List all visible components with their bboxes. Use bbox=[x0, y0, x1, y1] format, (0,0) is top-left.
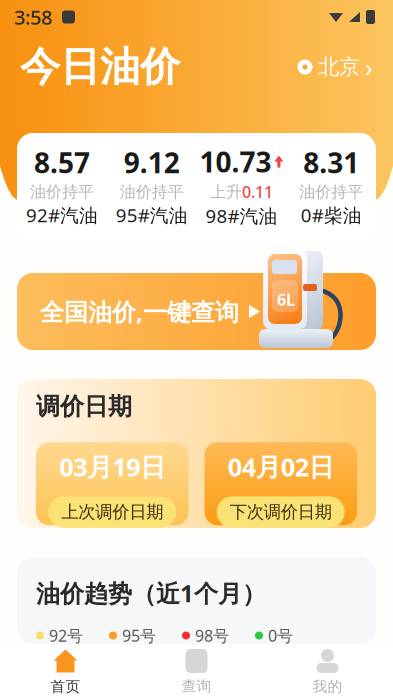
staticText: 10.73 bbox=[199, 143, 271, 180]
staticText: 95#汽油 bbox=[116, 203, 188, 227]
button[interactable]: 全国油价,一键查询 bbox=[17, 273, 376, 350]
staticText: 8.31 bbox=[303, 144, 359, 181]
staticText: 3:58 bbox=[14, 4, 52, 30]
staticText: 0号 bbox=[268, 625, 293, 646]
staticText: 北京 bbox=[318, 54, 360, 80]
staticText: 95号 bbox=[122, 625, 156, 646]
staticText: 全国油价,一键查询 bbox=[40, 296, 239, 327]
staticText: 92号 bbox=[49, 625, 83, 646]
staticText: 我的 bbox=[312, 677, 342, 695]
staticText: 98#汽油 bbox=[205, 203, 277, 228]
staticText: 油价持平 bbox=[299, 182, 363, 202]
staticText: 0#柴油 bbox=[301, 203, 362, 227]
staticText: 首页 bbox=[50, 677, 80, 695]
staticText: 下次调价日期 bbox=[230, 501, 332, 523]
button[interactable]: 查询 bbox=[131, 649, 262, 695]
staticText: 9.12 bbox=[124, 144, 180, 181]
staticText: 0.11 bbox=[242, 181, 273, 202]
button[interactable]: 我的 bbox=[262, 648, 393, 695]
staticText: 调价日期 bbox=[36, 392, 132, 421]
staticText: 上次调价日期 bbox=[61, 501, 163, 523]
staticText: 今日油价 bbox=[20, 42, 180, 91]
staticText: › bbox=[365, 50, 373, 84]
staticText: 6L bbox=[277, 289, 295, 310]
button[interactable]: 04月02日 bbox=[204, 442, 357, 525]
staticText: 油价趋势（近1个月） bbox=[36, 577, 266, 609]
staticText: 04月02日 bbox=[228, 450, 334, 483]
button[interactable]: 03月19日 bbox=[36, 442, 188, 525]
button[interactable]: 首页 bbox=[0, 648, 131, 695]
staticText: 98号 bbox=[195, 625, 229, 646]
staticText: 上升 bbox=[210, 182, 242, 202]
staticText: 8.57 bbox=[34, 144, 90, 181]
staticText: 油价持平 bbox=[120, 182, 184, 202]
staticText: 03月19日 bbox=[59, 450, 165, 483]
staticText: 92#汽油 bbox=[26, 203, 98, 227]
staticText: 油价持平 bbox=[30, 182, 94, 202]
button[interactable]: 北京 bbox=[297, 50, 373, 84]
staticText: 查询 bbox=[181, 677, 211, 695]
